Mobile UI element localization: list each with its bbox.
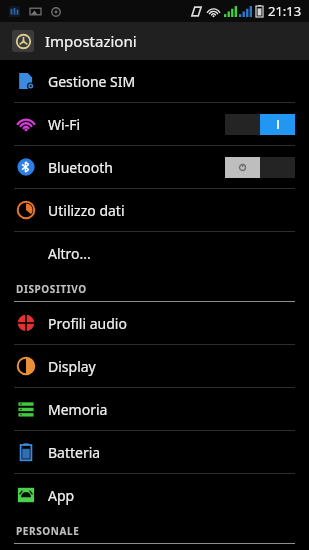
button[interactable]: Utilizzo dati bbox=[0, 189, 309, 231]
button[interactable]: Non attivo bbox=[225, 157, 295, 178]
staticText: Utilizzo dati bbox=[48, 201, 125, 220]
staticText: Display bbox=[48, 357, 96, 376]
button[interactable]: Profili audio bbox=[0, 302, 309, 344]
staticText: Bluetooth bbox=[48, 158, 113, 177]
staticText: App bbox=[48, 486, 75, 505]
button[interactable]: Altro... bbox=[0, 232, 309, 274]
button[interactable]: App bbox=[0, 474, 309, 516]
button[interactable]: Attivo bbox=[225, 114, 295, 135]
staticText: Impostazioni bbox=[45, 31, 137, 51]
staticText: Profili audio bbox=[48, 314, 127, 333]
staticText: PERSONALE bbox=[16, 524, 80, 538]
staticText: DISPOSITIVO bbox=[16, 282, 87, 296]
button[interactable]: Display bbox=[0, 345, 309, 387]
button[interactable]: Bluetooth bbox=[0, 146, 309, 188]
staticText: Wi-Fi bbox=[48, 115, 81, 134]
staticText: Memoria bbox=[48, 400, 108, 419]
button[interactable]: Batteria bbox=[0, 431, 309, 473]
staticText: Batteria bbox=[48, 443, 101, 462]
button[interactable]: Wi-Fi bbox=[0, 103, 309, 145]
staticText: Altro... bbox=[48, 244, 91, 263]
staticText: Gestione SIM bbox=[48, 72, 136, 91]
button[interactable]: Gestione SIM bbox=[0, 60, 309, 102]
staticText: 21:13 bbox=[268, 2, 302, 20]
button[interactable]: Memoria bbox=[0, 388, 309, 430]
